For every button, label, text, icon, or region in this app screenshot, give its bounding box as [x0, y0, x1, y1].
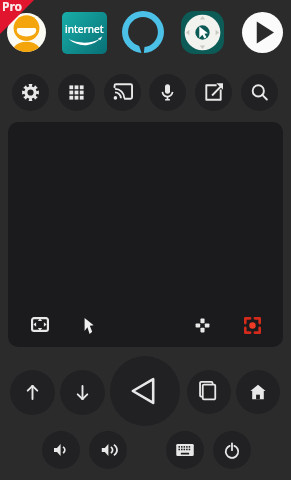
- button[interactable]: D-pad mode: [31, 317, 49, 332]
- button[interactable]: Internet browser: [62, 12, 107, 54]
- button[interactable]: Keyboard: [166, 431, 204, 469]
- button[interactable]: Profile: [7, 13, 46, 52]
- button[interactable]: Volume up: [89, 431, 127, 469]
- button[interactable]: Mouse mode: [181, 11, 224, 54]
- button[interactable]: Home: [236, 370, 280, 414]
- button[interactable]: Settings: [12, 74, 49, 111]
- button[interactable]: Play: [242, 12, 283, 53]
- staticText: Pro: [2, 0, 23, 14]
- button[interactable]: Record: [244, 317, 261, 334]
- button[interactable]: Alexa: [122, 11, 164, 53]
- button[interactable]: Search: [241, 74, 278, 111]
- button[interactable]: Touchpad: [8, 122, 283, 347]
- button[interactable]: Voice search: [149, 74, 186, 111]
- button[interactable]: Cursor mode: [84, 318, 94, 334]
- button[interactable]: Volume down: [42, 431, 80, 469]
- button[interactable]: Back: [110, 356, 180, 426]
- button[interactable]: Cast: [104, 74, 141, 111]
- button[interactable]: Recents: [187, 370, 231, 414]
- button[interactable]: Scroll up: [10, 370, 55, 415]
- button[interactable]: Power: [213, 431, 251, 469]
- button[interactable]: Scroll down: [60, 370, 105, 415]
- button[interactable]: Navigation pad: [195, 318, 210, 333]
- button[interactable]: Apps: [58, 74, 95, 111]
- button[interactable]: Open app: [195, 74, 232, 111]
- staticText: internet: [65, 22, 104, 36]
